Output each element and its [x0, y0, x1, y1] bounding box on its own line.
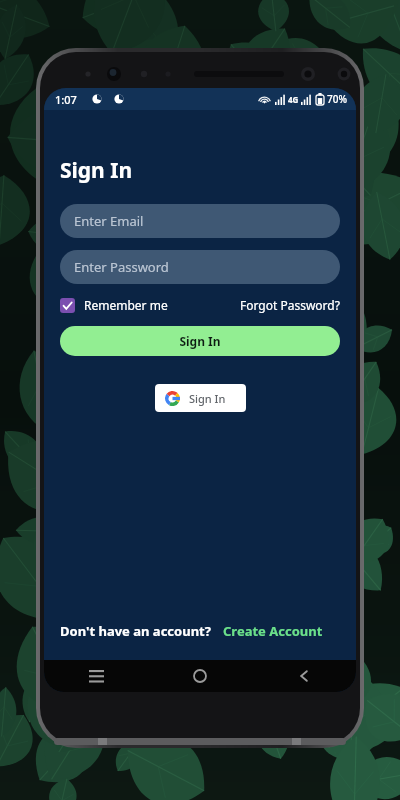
staticText: 1:07 — [55, 92, 77, 107]
button[interactable]: Sign In — [155, 384, 246, 412]
button[interactable]: Home — [148, 660, 252, 692]
button[interactable]: Sign In — [60, 326, 340, 356]
staticText: Sign In — [179, 333, 221, 349]
staticText: Sign In — [60, 156, 133, 185]
staticText: Forgot Password? — [240, 297, 340, 313]
staticText: Remember me — [84, 297, 168, 313]
button[interactable]: Recent apps — [44, 660, 148, 692]
staticText: Sign In — [189, 391, 226, 406]
button[interactable]: Remember me — [60, 297, 168, 313]
staticText: Enter Email — [74, 212, 144, 230]
staticText: 70% — [327, 92, 347, 106]
staticText: 4G — [288, 94, 299, 105]
staticText: Enter Password — [74, 258, 169, 276]
button[interactable]: Enter Password — [60, 250, 340, 284]
button[interactable]: Back — [252, 660, 356, 692]
button[interactable]: Create Account — [223, 622, 323, 640]
button[interactable]: Enter Email — [60, 204, 340, 238]
staticText: Don't have an account? — [60, 622, 211, 640]
button[interactable]: Forgot Password? — [240, 297, 340, 313]
staticText: Create Account — [223, 622, 323, 640]
